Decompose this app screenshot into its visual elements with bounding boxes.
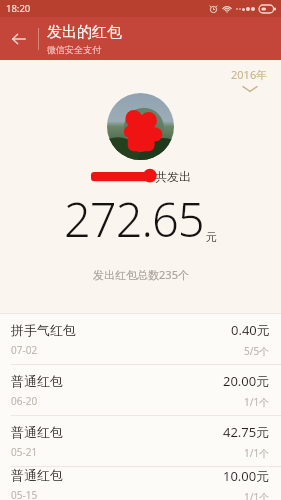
staticText: 元	[206, 230, 217, 244]
staticText: 2016年	[231, 67, 268, 82]
staticText: 发出红包总数235个	[93, 267, 189, 282]
button[interactable]: 普通红包	[0, 416, 281, 466]
staticText: 0.40元	[231, 321, 270, 339]
staticText: 42.75元	[223, 423, 270, 441]
staticText: 06-20	[11, 394, 38, 408]
staticText: 05-21	[11, 445, 38, 459]
button[interactable]: 2016年	[231, 67, 268, 92]
staticText: 拼手气红包	[11, 322, 76, 338]
button[interactable]: Back	[0, 17, 38, 60]
staticText: 普通红包	[11, 373, 63, 389]
staticText: 20.00元	[223, 372, 270, 390]
button[interactable]: 普通红包	[0, 365, 281, 415]
staticText: 10.00元	[223, 467, 270, 485]
staticText: 1/1个	[244, 490, 270, 500]
staticText: 05-15	[11, 488, 38, 500]
staticText: 普通红包	[11, 424, 63, 440]
button[interactable]: 拼手气红包	[0, 314, 281, 364]
staticText: 普通红包	[11, 467, 63, 483]
staticText: 07-02	[11, 343, 38, 357]
button[interactable]: 普通红包	[0, 467, 281, 500]
staticText: 18:20	[6, 2, 31, 15]
staticText: 272.65	[64, 187, 204, 251]
staticText: 共发出	[155, 169, 191, 184]
staticText: 5/5个	[244, 344, 270, 358]
staticText: 微信安全支付	[47, 44, 101, 55]
staticText: 发出的红包	[47, 23, 122, 42]
staticText: 1/1个	[244, 446, 270, 460]
staticText: 1/1个	[244, 395, 270, 409]
